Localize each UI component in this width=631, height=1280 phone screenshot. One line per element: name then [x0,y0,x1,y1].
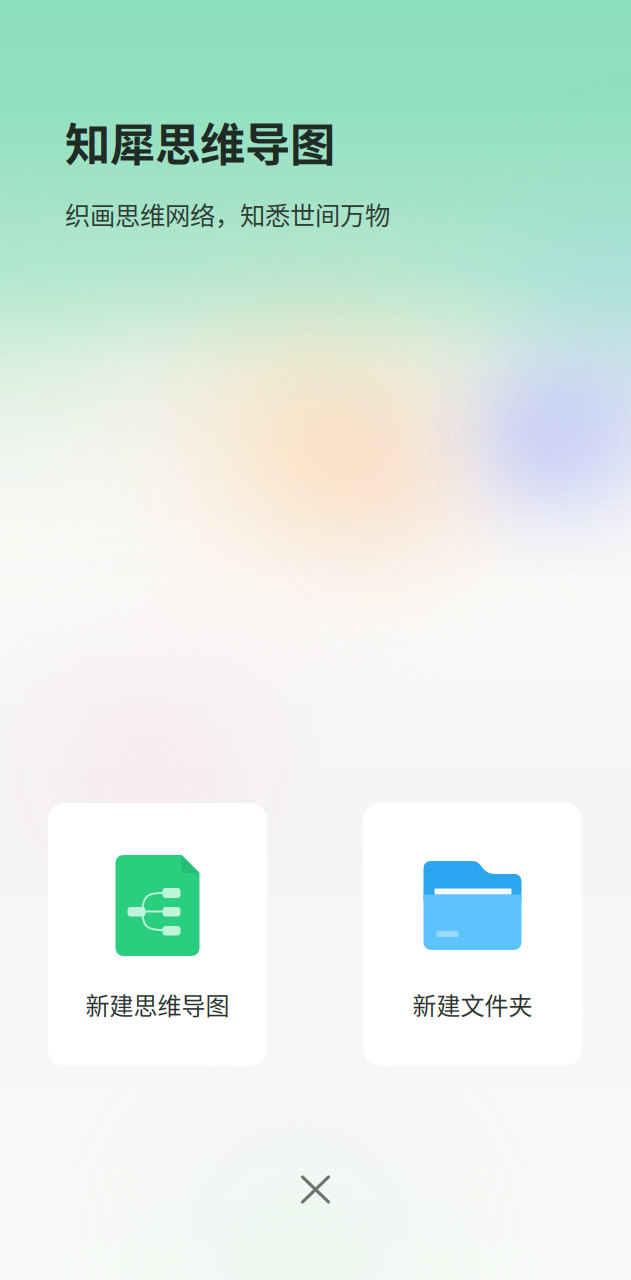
staticText: 新建文件夹 [412,987,532,1022]
button[interactable]: 新建思维导图 [48,803,267,1066]
button[interactable]: Close [289,1164,341,1215]
staticText: 新建思维导图 [85,987,229,1022]
staticText: 织画思维网络，知悉世间万物 [65,196,390,232]
staticText: 知犀思维导图 [65,109,335,175]
button[interactable]: 新建文件夹 [363,803,582,1066]
